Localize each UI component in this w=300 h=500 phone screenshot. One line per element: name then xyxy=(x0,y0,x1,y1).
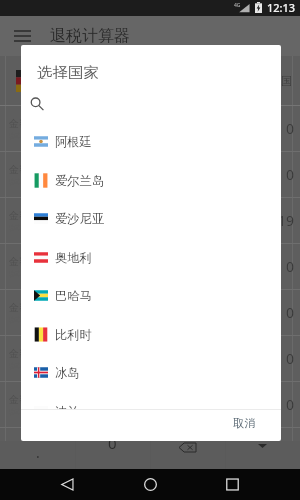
button[interactable]: 爱沙尼亚 xyxy=(21,199,281,238)
button[interactable]: . xyxy=(0,441,75,500)
staticText: 金额 xyxy=(9,117,29,130)
staticText: 选择国家 xyxy=(37,63,99,79)
staticText: 金额 xyxy=(9,255,29,268)
staticText: 比利时 xyxy=(55,327,92,342)
staticText: 19 xyxy=(278,211,295,230)
staticText: 税率 19% xyxy=(9,361,37,370)
staticText: 阿根廷 xyxy=(55,134,92,149)
button[interactable]: 爱尔兰岛 xyxy=(21,161,281,200)
staticText: 奥地利 xyxy=(55,250,92,265)
staticText: 取消 xyxy=(233,416,256,430)
button[interactable]: Backspace xyxy=(150,441,225,500)
button[interactable]: 波兰 xyxy=(21,392,281,409)
button[interactable]: Search xyxy=(25,92,49,116)
staticText: 德国 xyxy=(270,74,292,88)
button[interactable]: Menu xyxy=(5,19,39,53)
staticText: 税率 19% xyxy=(9,269,37,278)
staticText: 冰岛 xyxy=(55,365,80,380)
staticText: 金额 xyxy=(9,347,29,360)
button[interactable]: 比利时 xyxy=(21,315,281,354)
staticText: 税率 19% xyxy=(9,177,37,186)
button[interactable]: 奥地利 xyxy=(21,238,281,277)
staticText: 0 xyxy=(286,349,295,368)
staticText: 税率 19% xyxy=(9,407,37,416)
button[interactable]: Hide keyboard xyxy=(225,441,300,500)
button[interactable]: Recents xyxy=(217,469,248,500)
staticText: 0 xyxy=(286,395,295,414)
button[interactable]: 阿根廷 xyxy=(21,122,281,161)
button[interactable]: 冰岛 xyxy=(21,353,281,392)
button[interactable]: Back xyxy=(52,469,83,500)
staticText: 金额 xyxy=(9,209,29,222)
staticText: 波兰 xyxy=(55,404,80,409)
staticText: 12:13 xyxy=(267,0,296,15)
staticText: 金额 xyxy=(9,301,29,314)
staticText: 税率 19% xyxy=(9,131,37,140)
button[interactable]: Home xyxy=(135,469,166,500)
staticText: 金额 xyxy=(9,393,29,406)
staticText: 爱沙尼亚 xyxy=(55,211,105,226)
staticText: 0 xyxy=(286,165,295,184)
staticText: 金额 xyxy=(9,163,29,176)
staticText: 0 xyxy=(286,119,295,138)
staticText: 0 xyxy=(286,303,295,322)
staticText: 0 xyxy=(108,433,117,453)
staticText: 巴哈马 xyxy=(55,288,92,303)
staticText: 4G xyxy=(234,2,241,9)
staticText: . xyxy=(36,443,40,462)
staticText: 爱尔兰岛 xyxy=(55,173,105,188)
staticText: 税率 19% xyxy=(9,223,37,232)
button[interactable]: 巴哈马 xyxy=(21,276,281,315)
button[interactable]: 0 xyxy=(75,441,150,500)
staticText: 税率 19% xyxy=(9,315,37,324)
staticText: 0 xyxy=(286,257,295,276)
staticText: 退税计算器 xyxy=(50,26,130,46)
button[interactable]: 取消 xyxy=(217,409,281,437)
